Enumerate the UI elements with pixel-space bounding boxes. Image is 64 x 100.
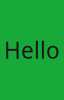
staticText: Hello (4, 35, 60, 65)
